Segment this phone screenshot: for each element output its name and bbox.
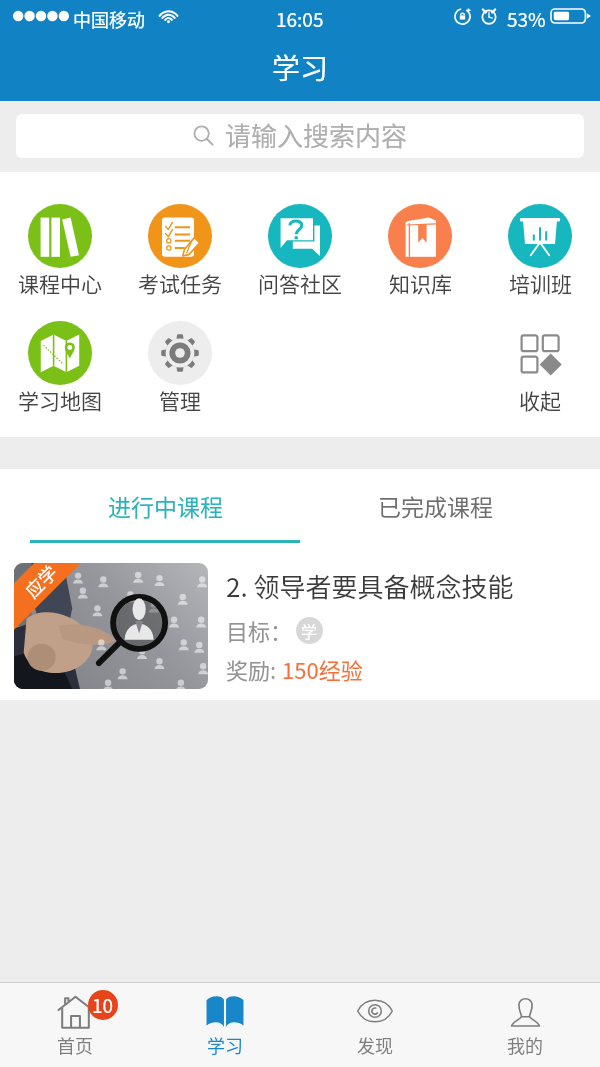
staticText: 进行中课程: [108, 489, 223, 522]
staticText: 我的: [507, 1032, 543, 1058]
staticText: 2. 领导者要具备概念技能: [226, 567, 514, 605]
staticText: 奖励:: [226, 653, 282, 685]
staticText: 150经验: [282, 653, 363, 685]
button[interactable]: 请输入搜索内容: [16, 114, 584, 158]
staticText: 学习地图: [18, 385, 102, 415]
button[interactable]: 已完成课程: [300, 469, 570, 543]
button[interactable]: 应学: [0, 543, 600, 700]
staticText: 应学: [18, 563, 62, 603]
button[interactable]: 收起: [480, 321, 600, 415]
staticText: 中国移动: [73, 6, 145, 32]
button[interactable]: 问答社区: [240, 204, 360, 298]
button[interactable]: 我的: [450, 983, 600, 1058]
button[interactable]: 课程中心: [0, 204, 120, 298]
button[interactable]: 10: [0, 983, 150, 1058]
button[interactable]: 进行中课程: [30, 469, 300, 543]
button[interactable]: 学习地图: [0, 321, 120, 415]
button[interactable]: 管理: [120, 321, 240, 415]
staticText: 10: [92, 991, 114, 1019]
staticText: 发现: [357, 1032, 393, 1058]
button[interactable]: 培训班: [480, 204, 600, 298]
staticText: 考试任务: [138, 268, 222, 298]
staticText: 培训班: [509, 268, 572, 298]
button[interactable]: 学习: [150, 983, 300, 1058]
button[interactable]: 发现: [300, 983, 450, 1058]
staticText: 收起: [519, 385, 561, 415]
staticText: 问答社区: [258, 268, 342, 298]
staticText: 目标：: [226, 614, 293, 646]
staticText: 学: [301, 619, 318, 642]
staticText: 请输入搜索内容: [225, 116, 408, 154]
staticText: 管理: [159, 385, 201, 415]
staticText: 已完成课程: [378, 489, 493, 522]
staticText: 课程中心: [18, 268, 102, 298]
staticText: 学习: [272, 47, 329, 88]
staticText: 知识库: [389, 268, 452, 298]
staticText: 53%: [507, 5, 546, 33]
staticText: 学习: [207, 1032, 243, 1058]
staticText: 首页: [57, 1032, 93, 1058]
staticText: 16:05: [276, 5, 324, 33]
button[interactable]: 考试任务: [120, 204, 240, 298]
button[interactable]: 知识库: [360, 204, 480, 298]
